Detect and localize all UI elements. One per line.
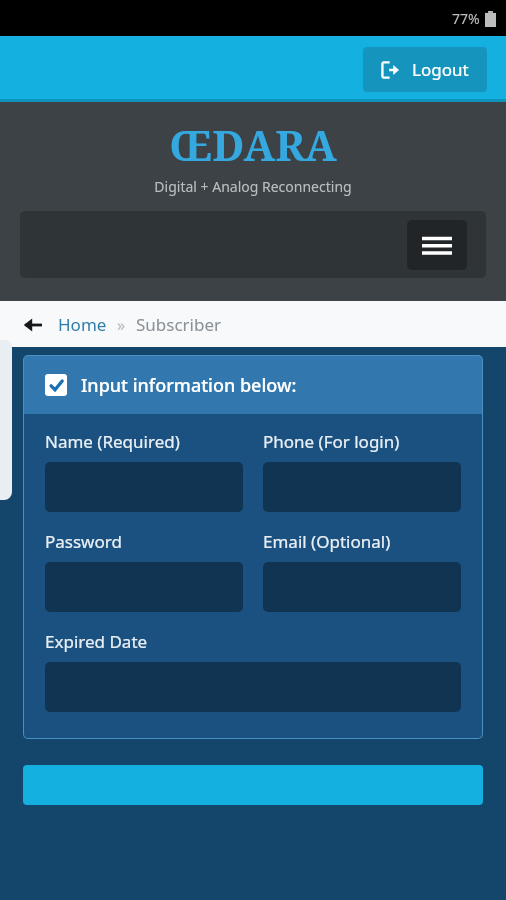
button[interactable]: Input information below: [24,356,482,414]
button[interactable]: Menu [407,220,467,270]
staticText: Name (Required) [45,430,180,453]
staticText: ŒDARA [169,116,337,173]
staticText: Password [45,530,122,553]
button[interactable]: Back [22,314,44,336]
staticText: » [117,314,126,336]
staticText: Home [58,313,107,336]
staticText: Subscriber [136,313,222,336]
button[interactable]: Open navigation drawer [0,340,12,500]
button[interactable]: Home [58,313,107,336]
staticText: Expired Date [45,630,148,653]
staticText: Email (Optional) [263,530,391,553]
staticText: Input information below: [81,373,297,398]
button[interactable]: Logout [363,47,487,92]
staticText: Logout [412,58,469,81]
staticText: 77% [452,9,480,28]
staticText: Phone (For login) [263,430,400,453]
staticText: Digital + Analog Reconnecting [154,177,352,196]
